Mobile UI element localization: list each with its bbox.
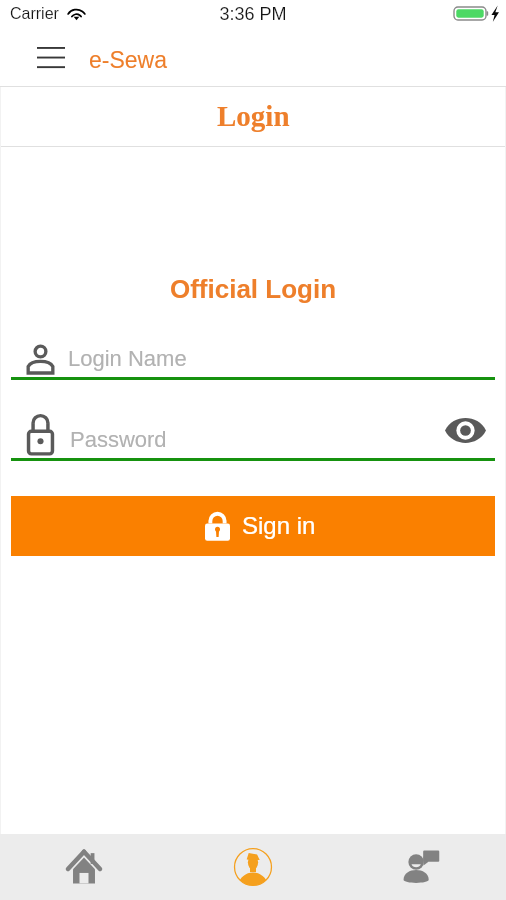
button[interactable]: Password (11, 420, 495, 461)
staticText: Carrier (10, 5, 59, 23)
button[interactable]: Show password (441, 410, 489, 451)
staticText: Password (70, 427, 167, 452)
staticText: Login (217, 100, 290, 132)
staticText: Sign in (242, 512, 316, 539)
button[interactable]: Support (337, 834, 506, 900)
staticText: 3:36 PM (0, 4, 506, 24)
button[interactable]: Sign in (11, 496, 495, 556)
staticText: e-Sewa (89, 47, 167, 73)
button[interactable]: Open navigation menu (29, 39, 73, 75)
staticText: Official Login (0, 274, 506, 303)
button[interactable]: Login Name (11, 339, 495, 380)
button[interactable]: Profile (168, 834, 337, 900)
button[interactable]: Home (0, 834, 168, 900)
staticText: Login Name (68, 346, 187, 371)
